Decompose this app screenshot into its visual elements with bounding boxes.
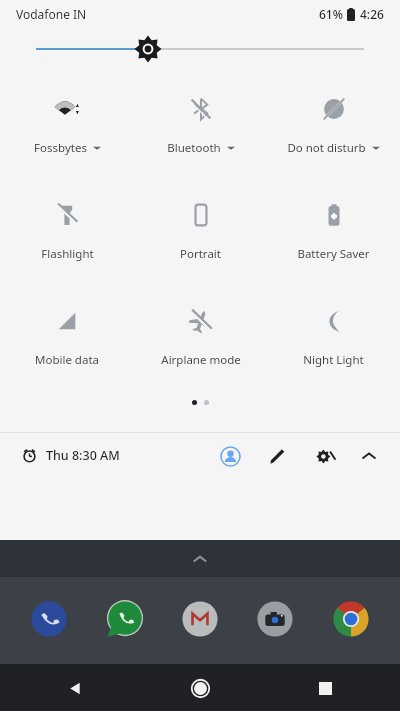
button[interactable]: Settings (309, 440, 341, 472)
staticText: Portrait (180, 246, 221, 262)
staticText: Bluetooth (167, 140, 221, 156)
button[interactable]: Thu 8:30 AM (22, 447, 120, 464)
button[interactable]: User (215, 441, 245, 471)
button[interactable]: Gmail (174, 593, 226, 645)
button[interactable]: WhatsApp (99, 593, 151, 645)
button[interactable]: Edit (262, 441, 292, 471)
button[interactable]: Do not disturb (267, 92, 400, 160)
staticText: Mobile data (35, 352, 99, 368)
button[interactable]: Battery Saver (267, 198, 400, 266)
button[interactable]: Night Light (267, 304, 400, 372)
staticText: Night Light (303, 352, 364, 368)
button[interactable]: Flashlight (0, 198, 134, 266)
staticText: Airplane mode (161, 352, 241, 368)
button[interactable]: Phone (23, 593, 75, 645)
button[interactable]: Brightness (0, 28, 400, 70)
button[interactable]: Open app drawer (190, 549, 210, 569)
staticText: 4:26 (360, 6, 384, 22)
button[interactable]: Fossbytes (0, 92, 134, 160)
staticText: Flashlight (41, 246, 94, 262)
staticText: 61% (319, 6, 343, 22)
button[interactable]: Portrait (134, 198, 267, 266)
button[interactable]: Back (58, 671, 92, 705)
button[interactable]: Chrome (325, 593, 377, 645)
staticText: Do not disturb (287, 140, 366, 156)
staticText: Battery Saver (297, 246, 370, 262)
button[interactable]: Recent apps (308, 671, 342, 705)
button[interactable]: Bluetooth (134, 92, 267, 160)
button[interactable]: Collapse (354, 441, 384, 471)
staticText: Fossbytes (34, 140, 87, 156)
staticText: Vodafone IN (16, 6, 87, 22)
staticText: Thu 8:30 AM (46, 447, 120, 464)
button[interactable]: Airplane mode (134, 304, 267, 372)
button[interactable]: Camera (249, 593, 301, 645)
button[interactable]: Mobile data (0, 304, 134, 372)
button[interactable]: Home (183, 671, 217, 705)
